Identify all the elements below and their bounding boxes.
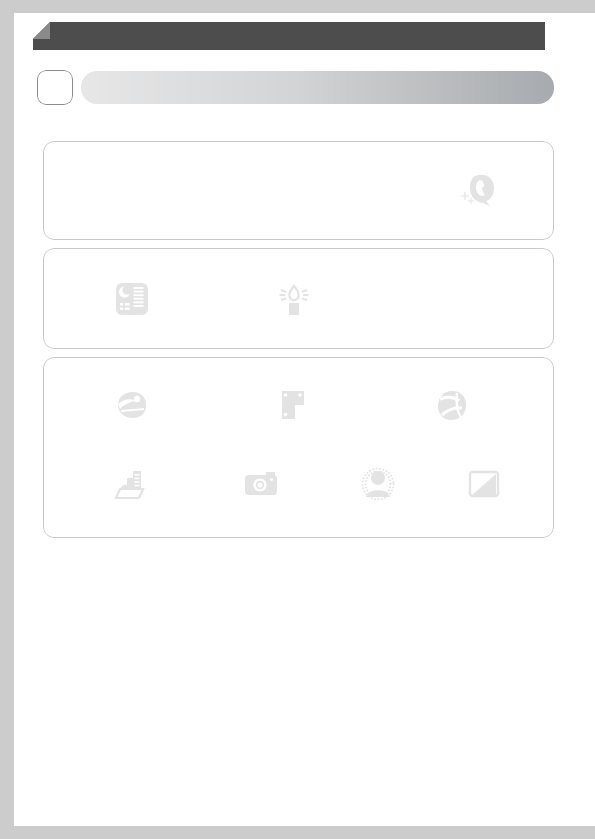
button[interactable]: Select: [37, 70, 73, 105]
button[interactable]: Portrait: [355, 461, 401, 507]
button[interactable]: Night article: [109, 276, 155, 322]
button[interactable]: Beautify: [43, 141, 554, 240]
button[interactable]: Bird: [43, 357, 554, 538]
button[interactable]: Camera: [238, 461, 284, 507]
button[interactable]: Night article: [43, 248, 554, 349]
button[interactable]: Sport: [429, 383, 475, 429]
button[interactable]: Contrast: [461, 461, 507, 507]
button[interactable]: Bird: [109, 383, 155, 429]
button[interactable]: Film: [269, 383, 315, 429]
button[interactable]: Beautify: [457, 168, 503, 214]
button[interactable]: Candle light: [271, 276, 317, 322]
button[interactable]: Landscape: [108, 461, 154, 507]
button[interactable]: Search: [81, 71, 554, 104]
